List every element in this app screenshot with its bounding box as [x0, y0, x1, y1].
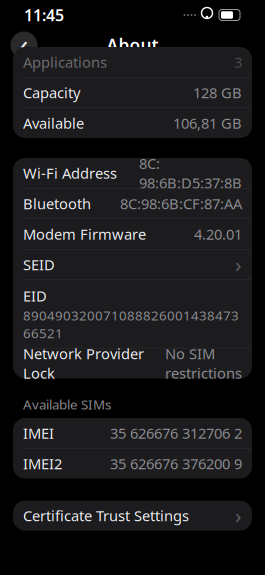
button[interactable]: Back — [9, 30, 39, 60]
button[interactable]: Capacity — [13, 77, 252, 107]
staticText: 128 GB — [193, 83, 242, 102]
staticText: 35 626676 376200 9 — [110, 454, 242, 473]
button[interactable]: EID — [13, 280, 252, 348]
button[interactable]: Applications — [13, 47, 252, 77]
staticText: 35 626676 312706 2 — [110, 423, 242, 443]
staticText: Modem Firmware — [23, 224, 146, 244]
button[interactable]: Network Provider Lock — [13, 348, 252, 378]
staticText: IMEI2 — [23, 454, 62, 473]
staticText: 8C:98:6B:CF:87:AA — [120, 194, 242, 213]
staticText: SEID — [23, 255, 55, 274]
staticText: 4.20.01 — [194, 224, 242, 244]
button[interactable]: Modem Firmware — [13, 219, 252, 249]
staticText: › — [235, 502, 242, 529]
staticText: › — [235, 251, 242, 278]
staticText: 89049032007108882600143847366521 — [23, 306, 239, 342]
button[interactable]: Certificate Trust Settings — [13, 501, 252, 531]
staticText: Available SIMs — [23, 395, 111, 413]
button[interactable]: SEID — [13, 249, 252, 279]
button[interactable]: IMEI — [13, 418, 252, 448]
button[interactable]: IMEI2 — [13, 449, 252, 479]
staticText: 106,81 GB — [173, 113, 242, 133]
staticText: Wi-Fi Address — [23, 163, 117, 183]
staticText: Certificate Trust Settings — [23, 506, 189, 525]
button[interactable]: Available — [13, 108, 252, 138]
staticText: Capacity — [23, 83, 80, 102]
staticText: EID — [23, 286, 47, 305]
button[interactable]: Wi-Fi Address — [13, 158, 252, 188]
staticText: Network Provider Lock — [23, 344, 144, 383]
button[interactable]: Bluetooth — [13, 188, 252, 218]
staticText: Applications — [23, 52, 107, 72]
staticText: ‹ — [20, 27, 28, 61]
staticText: 3 — [234, 52, 242, 72]
staticText: Bluetooth — [23, 194, 91, 213]
staticText: About — [106, 33, 158, 56]
staticText: 8C:98:6B:D5:37:8B — [139, 153, 242, 192]
staticText: Available — [23, 113, 84, 133]
staticText: 11:45 — [24, 4, 64, 26]
staticText: No SIM restrictions — [165, 344, 242, 383]
staticText: IMEI — [23, 423, 54, 443]
